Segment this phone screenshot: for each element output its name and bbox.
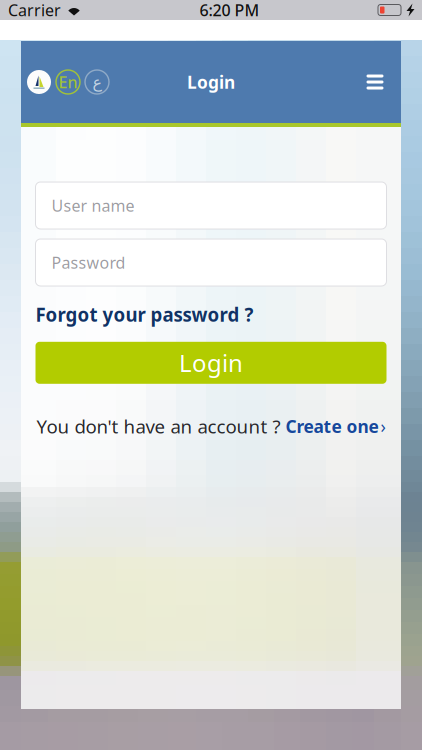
staticText: ع bbox=[92, 73, 102, 91]
staticText: Login bbox=[179, 347, 243, 379]
button[interactable]: User name bbox=[35, 182, 386, 229]
staticText: Carrier bbox=[8, 0, 61, 21]
staticText: You don't have an account ? bbox=[36, 414, 280, 439]
button[interactable]: En bbox=[56, 70, 80, 94]
button[interactable]: ع bbox=[85, 70, 109, 94]
staticText: Create one bbox=[285, 415, 378, 438]
staticText: 6:20 PM bbox=[199, 0, 259, 21]
button[interactable]: Login bbox=[35, 342, 386, 384]
button[interactable]: Menu bbox=[356, 63, 394, 101]
button[interactable]: Forgot your password ? bbox=[35, 302, 253, 327]
staticText: › bbox=[380, 415, 385, 438]
button[interactable]: Password bbox=[35, 239, 386, 286]
staticText: Forgot your password ? bbox=[35, 302, 253, 327]
staticText: Login bbox=[187, 70, 235, 93]
staticText: En bbox=[58, 71, 77, 93]
button[interactable]: Home bbox=[27, 70, 51, 94]
button[interactable]: Create one bbox=[280, 415, 385, 438]
staticText: User name bbox=[51, 195, 134, 216]
staticText: Password bbox=[51, 252, 125, 273]
